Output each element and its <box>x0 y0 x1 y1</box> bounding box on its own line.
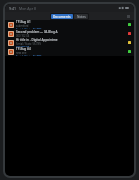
staticText: Serial / Stats: 56.78% <box>16 55 42 56</box>
button[interactable]: TP-Bug #4 <box>5 47 134 56</box>
staticText: Notes <box>77 15 86 19</box>
button[interactable]: Second problem — 04-Blog A <box>5 29 134 38</box>
staticText: TP-Bug #4 <box>16 47 31 51</box>
staticText: 000 102 04 <box>16 34 30 38</box>
button[interactable]: TP-Bug #1 <box>5 20 134 29</box>
other: Status indicator <box>128 50 131 53</box>
staticText: new one <box>16 51 27 55</box>
other: Status indicator <box>128 23 131 26</box>
staticText: Mon Apr 8 <box>19 6 37 11</box>
other: Status indicator <box>128 32 131 35</box>
button[interactable]: More options <box>126 14 130 18</box>
staticText: 000 000 00 <box>16 46 30 47</box>
button[interactable]: Notes <box>74 14 88 19</box>
staticText: submitted <box>16 24 29 28</box>
staticText: TP-Bug #1 <box>16 20 31 24</box>
staticText: Serial / Stats: 56.78% <box>16 42 42 46</box>
other: Status indicator <box>128 41 131 44</box>
button[interactable]: Documents <box>51 14 73 19</box>
staticText: Hi title in - Digital Appointme <box>16 38 58 42</box>
button[interactable]: Hi title in - Digital Appointme <box>5 38 134 47</box>
staticText: Serial / Stats: 56.78% <box>16 28 42 29</box>
staticText: Documents <box>53 15 71 19</box>
staticText: 9:41 <box>9 6 16 11</box>
staticText: Second problem — 04-Blog A <box>16 30 58 34</box>
